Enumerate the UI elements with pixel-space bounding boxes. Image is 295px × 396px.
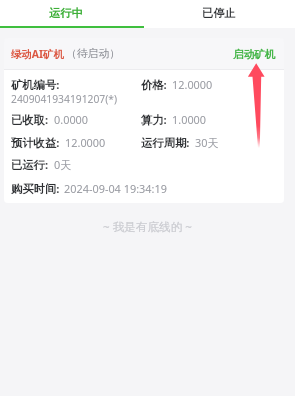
staticText: 12.0000 <box>172 77 213 92</box>
staticText: 已停止 <box>202 6 236 20</box>
staticText: 绿动AI矿机 <box>11 47 64 61</box>
staticText: 已运行: <box>11 157 49 172</box>
button[interactable]: 已停止 <box>142 0 295 28</box>
button[interactable]: 运行中 <box>0 0 131 28</box>
staticText: 矿机编号: <box>11 77 60 92</box>
staticText: 购买时间: <box>11 181 60 196</box>
staticText: （待启动） <box>66 47 120 61</box>
staticText: 算力: <box>141 112 167 127</box>
staticText: 已收取: <box>11 112 49 127</box>
button[interactable]: 绿动AI矿机 <box>4 38 284 69</box>
other: Tap start miner <box>0 0 295 396</box>
staticText: 启动矿机 <box>233 48 276 61</box>
staticText: 30天 <box>195 135 219 150</box>
staticText: 运行周期: <box>141 135 190 150</box>
staticText: 2024-09-04 19:34:19 <box>64 181 167 196</box>
staticText: 0.0000 <box>54 112 89 127</box>
button[interactable]: 启动矿机 <box>233 48 276 61</box>
staticText: 0天 <box>54 157 72 172</box>
staticText: 价格: <box>141 77 167 92</box>
staticText: 12.0000 <box>65 135 106 150</box>
staticText: 运行中 <box>49 6 83 20</box>
staticText: 1.0000 <box>172 112 207 127</box>
staticText: 2409041934191207(*) <box>11 92 118 106</box>
staticText: ~ 我是有底线的 ~ <box>103 219 192 235</box>
staticText: 预计收益: <box>11 135 60 150</box>
